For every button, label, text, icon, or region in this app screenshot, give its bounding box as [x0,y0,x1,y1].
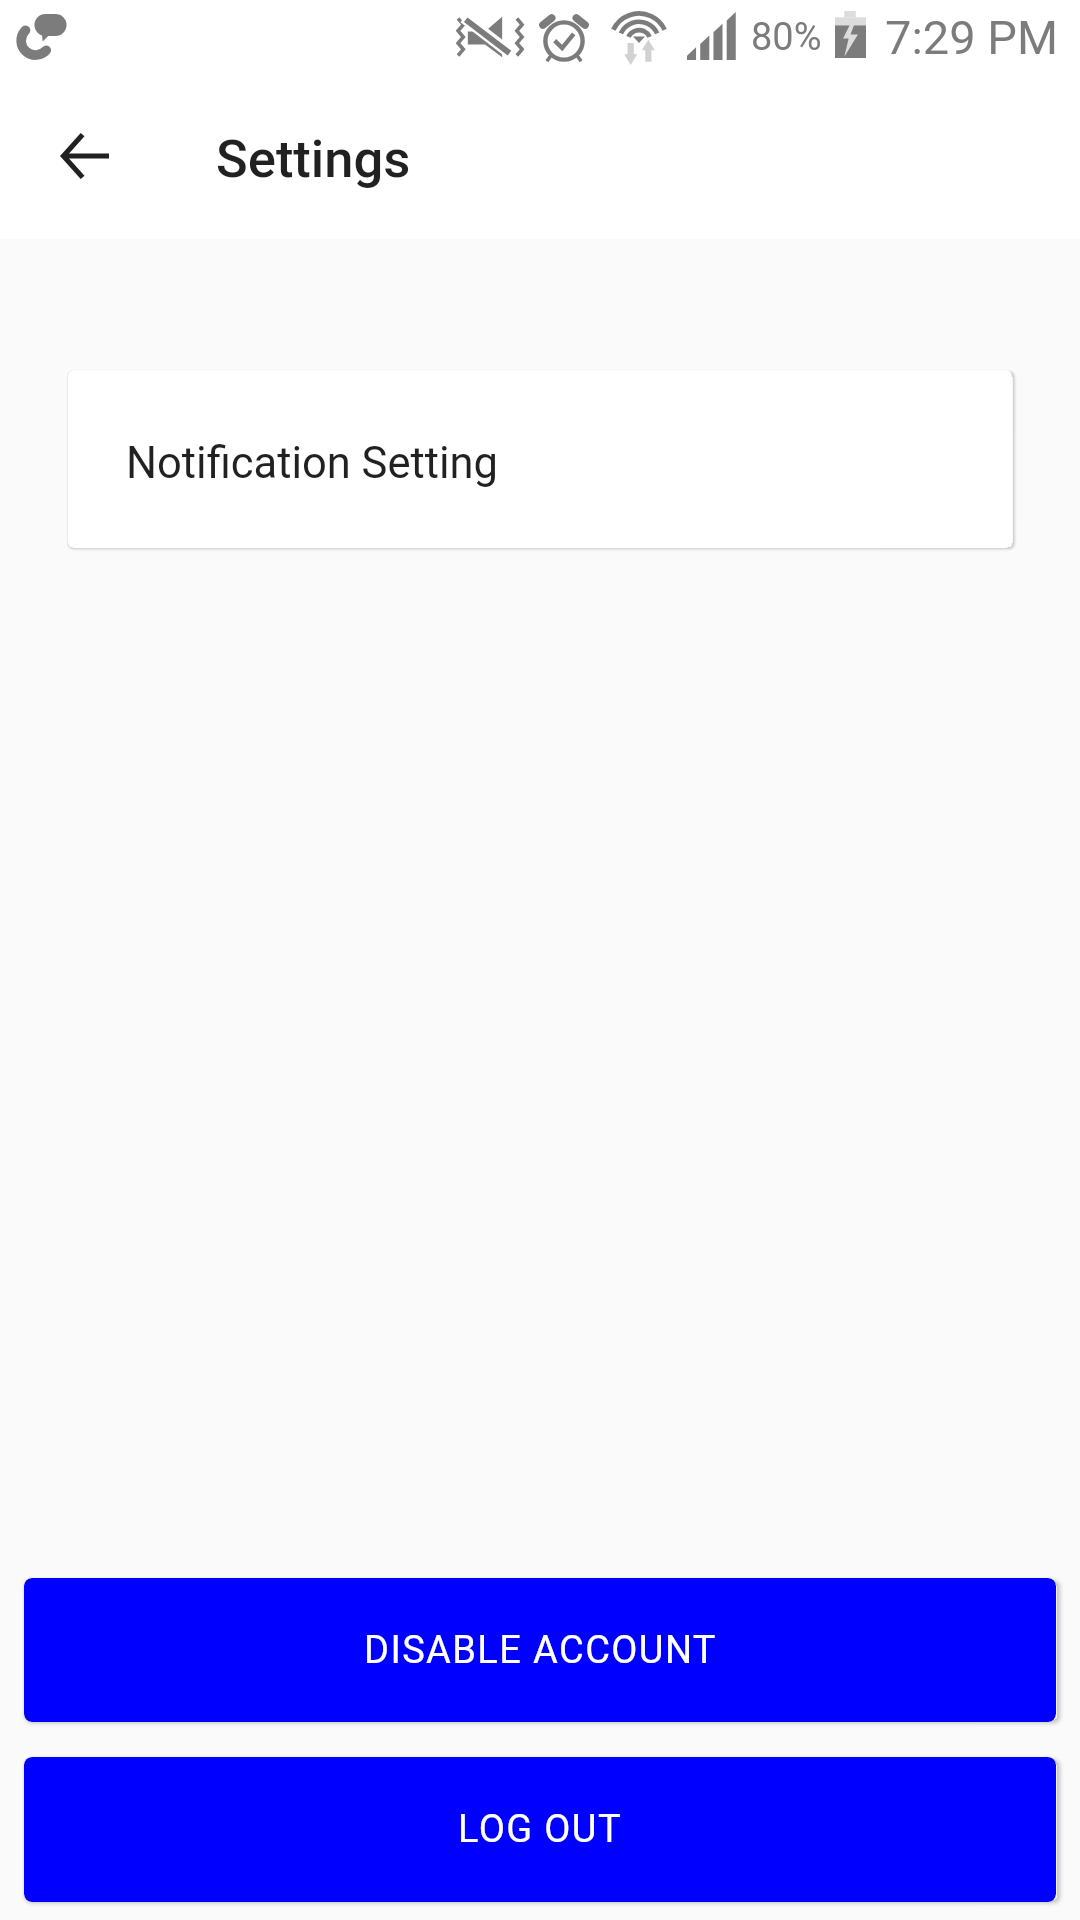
button[interactable]: Back [37,108,132,203]
staticText: Settings [216,128,411,190]
staticText: LOG OUT [458,1807,622,1852]
staticText: 7:29 PM [885,10,1058,65]
staticText: DISABLE ACCOUNT [364,1628,717,1673]
button[interactable]: Notification Setting [68,370,1012,548]
button[interactable]: DISABLE ACCOUNT [24,1578,1056,1722]
staticText: Notification Setting [126,438,499,489]
staticText: 80% [751,15,822,60]
button[interactable]: LOG OUT [24,1757,1056,1902]
